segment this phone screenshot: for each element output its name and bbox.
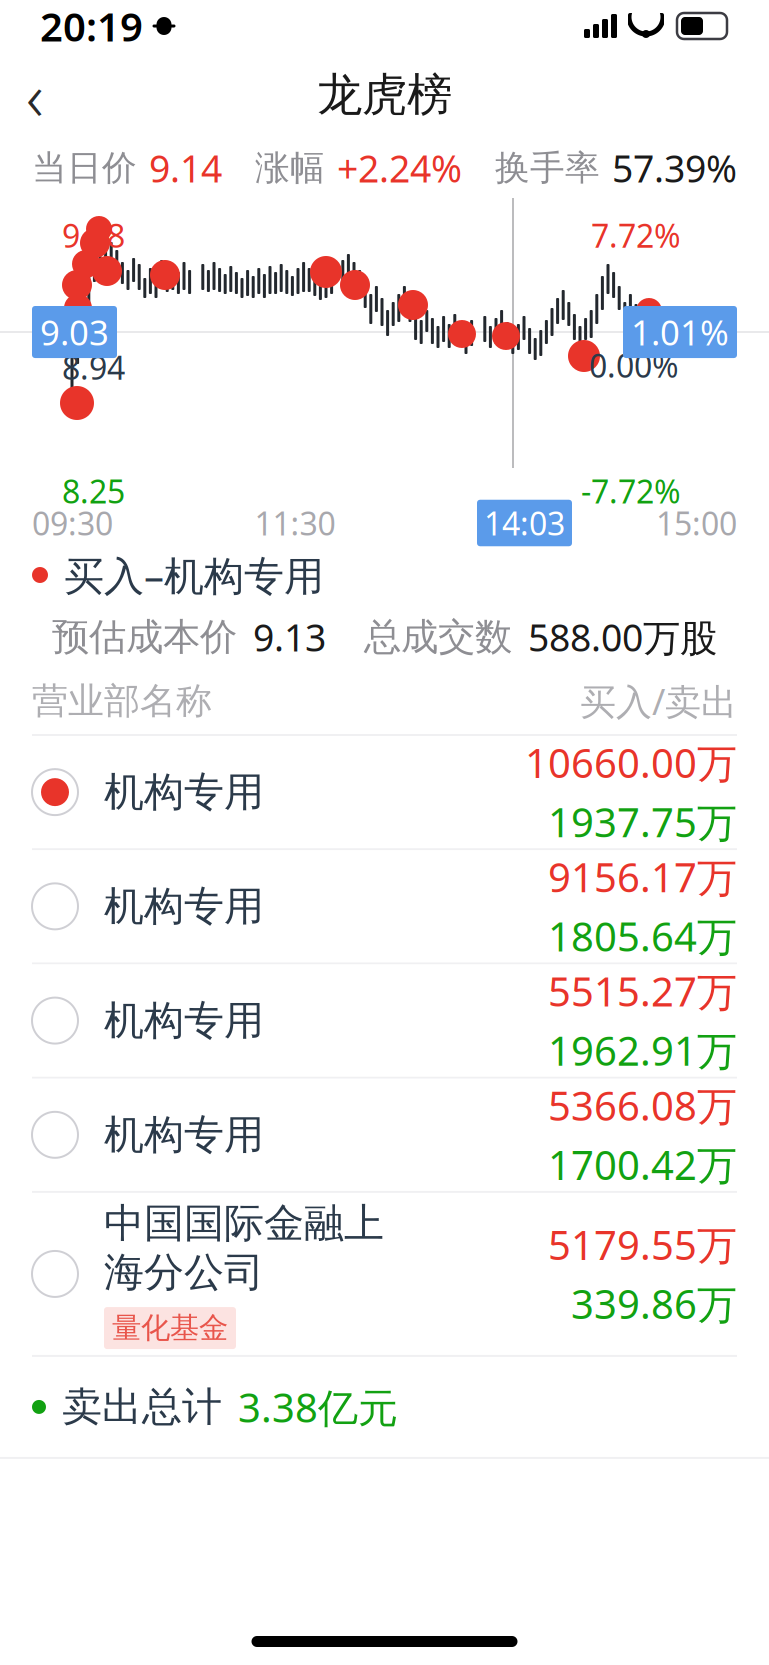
button[interactable]: 机构专用: [0, 964, 769, 1079]
staticText: 1700.42万: [548, 1138, 737, 1191]
button[interactable]: 机构专用: [0, 850, 769, 964]
staticText: 8.94: [62, 346, 125, 388]
staticText: 1.01%: [631, 309, 729, 355]
staticText: 339.86万: [571, 1277, 737, 1330]
staticText: 0.00%: [589, 344, 679, 386]
staticText: 5179.55万: [548, 1218, 737, 1271]
staticText: -7.72%: [581, 470, 681, 512]
staticText: 营业部名称: [32, 679, 212, 723]
staticText: 中国国际金融上海分公司: [104, 1199, 384, 1297]
staticText: 买入/卖出: [580, 677, 737, 725]
staticText: 9.13: [253, 612, 326, 662]
staticText: 14:03: [484, 502, 565, 544]
staticText: 3.38亿元: [238, 1380, 398, 1433]
staticText: 换手率: [495, 147, 600, 189]
staticText: 15:00: [656, 502, 737, 544]
staticText: 机构专用: [104, 768, 264, 817]
staticText: 总成交数: [364, 614, 512, 660]
staticText: 7.72%: [591, 214, 681, 256]
staticText: 买入–机构专用: [64, 548, 324, 601]
button[interactable]: 中国国际金融上海分公司: [0, 1193, 769, 1357]
staticText: 9.03: [40, 309, 109, 355]
staticText: 09:30: [32, 502, 113, 544]
staticText: 11:30: [254, 502, 335, 544]
staticText: 量化基金: [112, 1310, 228, 1346]
staticText: 9.88: [62, 214, 125, 256]
button[interactable]: 机构专用: [0, 1079, 769, 1193]
staticText: 1962.91万: [548, 1024, 737, 1077]
staticText: 当日价: [32, 147, 137, 189]
button[interactable]: Back: [0, 60, 70, 130]
staticText: ‹: [26, 51, 44, 139]
staticText: 预估成本价: [52, 614, 237, 660]
staticText: 588.00万股: [528, 612, 717, 662]
staticText: 机构专用: [104, 882, 264, 931]
staticText: 9156.17万: [548, 850, 737, 903]
staticText: 20:19: [40, 0, 143, 52]
staticText: +2.24%: [337, 143, 462, 193]
staticText: 10660.00万: [525, 736, 737, 789]
staticText: 5366.08万: [548, 1079, 737, 1132]
button[interactable]: 机构专用: [0, 736, 769, 850]
staticText: 1805.64万: [548, 909, 737, 962]
staticText: 1937.75万: [548, 795, 737, 848]
staticText: 8.25: [62, 470, 125, 512]
staticText: 57.39%: [612, 143, 737, 193]
staticText: 涨幅: [255, 147, 325, 189]
staticText: 机构专用: [104, 996, 264, 1045]
staticText: 5515.27万: [548, 964, 737, 1018]
staticText: 卖出总计: [62, 1382, 222, 1431]
staticText: 龙虎榜: [317, 67, 452, 123]
staticText: 9.14: [149, 143, 222, 193]
staticText: 机构专用: [104, 1110, 264, 1159]
